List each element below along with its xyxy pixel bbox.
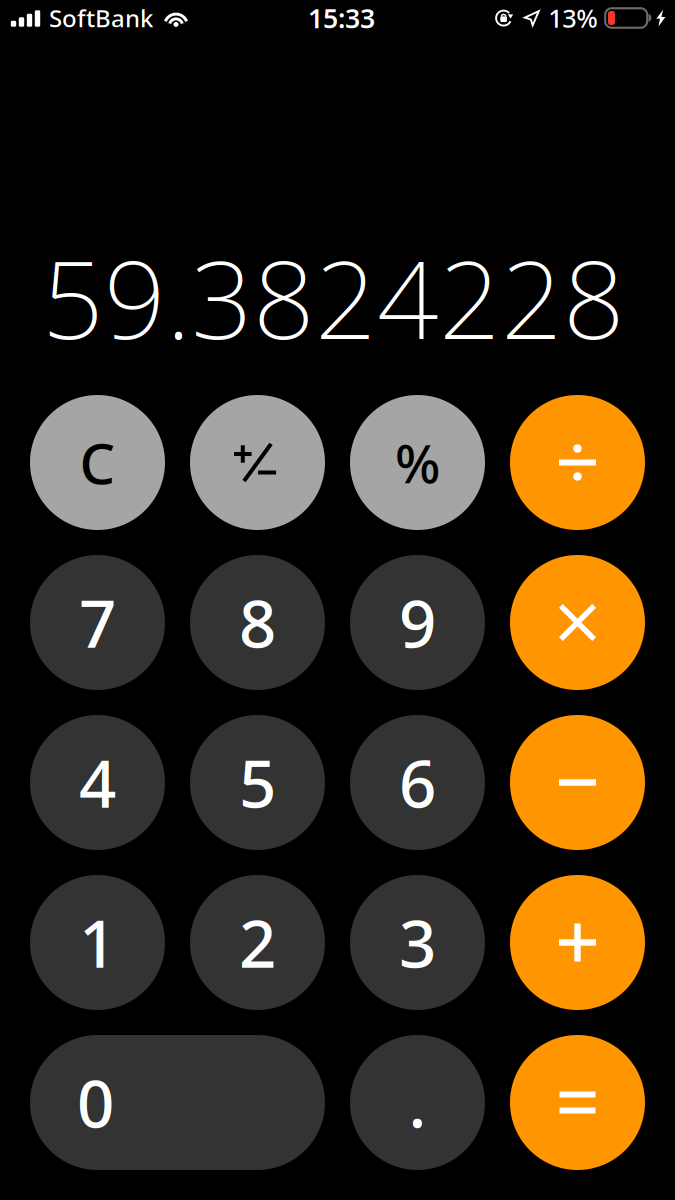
button[interactable]: 9 [350, 555, 485, 690]
staticText: 1 [79, 899, 116, 986]
button[interactable]: 5 [190, 715, 325, 850]
button[interactable]: Subtract [510, 715, 645, 850]
staticText: % [395, 427, 440, 498]
button[interactable]: 1 [30, 875, 165, 1010]
staticText: 8 [239, 579, 276, 666]
staticText: 0 [77, 1059, 114, 1146]
staticText: 15:33 [308, 0, 375, 36]
button[interactable]: 4 [30, 715, 165, 850]
button[interactable]: 6 [350, 715, 485, 850]
button[interactable]: Multiply [510, 555, 645, 690]
button[interactable]: Equals [510, 1035, 645, 1170]
staticText: . [408, 1059, 426, 1146]
button[interactable]: 3 [350, 875, 485, 1010]
staticText: 9 [399, 579, 436, 666]
staticText: 6 [399, 739, 436, 826]
staticText: C [79, 425, 115, 500]
staticText: 59.3824228 [42, 225, 625, 369]
button[interactable]: 2 [190, 875, 325, 1010]
button[interactable]: 0 [30, 1035, 325, 1170]
staticText: 5 [239, 739, 276, 826]
button[interactable]: Add [510, 875, 645, 1010]
staticText: 4 [79, 739, 116, 826]
staticText: 2 [239, 899, 276, 986]
staticText: 3 [399, 899, 436, 986]
button[interactable]: % [350, 395, 485, 530]
button[interactable]: 7 [30, 555, 165, 690]
staticText: 13% [548, 1, 598, 35]
staticText: SoftBank [49, 2, 153, 34]
button[interactable]: . [350, 1035, 485, 1170]
button[interactable]: Divide [510, 395, 645, 530]
button[interactable]: Toggle sign [190, 395, 325, 530]
button[interactable]: C [30, 395, 165, 530]
button[interactable]: 8 [190, 555, 325, 690]
staticText: 7 [79, 579, 116, 666]
